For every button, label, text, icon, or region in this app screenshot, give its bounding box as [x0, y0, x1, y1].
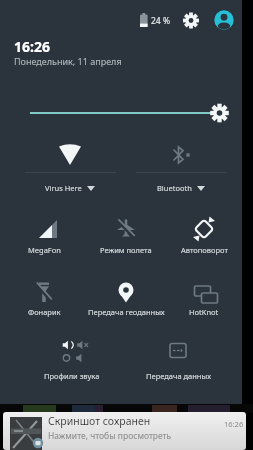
button[interactable]: Bluetooth: [135, 138, 227, 200]
button[interactable]: Передача геоданных: [80, 275, 172, 325]
button[interactable]: Передача данных: [132, 335, 224, 389]
button[interactable]: Профили звука: [26, 335, 118, 389]
staticText: 24 %: [151, 15, 170, 27]
staticText: 16:26: [224, 419, 244, 429]
button[interactable]: Скриншот сохранен: [3, 412, 246, 450]
button[interactable]: Режим полета: [80, 213, 172, 263]
staticText: HotKnot: [189, 307, 219, 317]
staticText: Bluetooth: [157, 183, 192, 193]
staticText: Virus Here: [45, 183, 82, 193]
button[interactable]: [214, 10, 234, 30]
button[interactable]: MegaFon: [0, 213, 90, 263]
button[interactable]: [22, 101, 232, 125]
staticText: Передача геоданных: [88, 307, 165, 317]
staticText: Фонарик: [28, 307, 61, 317]
staticText: Передача данных: [146, 371, 211, 381]
staticText: Режим полета: [100, 245, 152, 255]
button[interactable]: Автоповорот: [158, 213, 250, 263]
button[interactable]: [181, 10, 201, 30]
staticText: 16:26: [14, 37, 50, 56]
staticText: Скриншот сохранен: [48, 414, 151, 428]
button[interactable]: Virus Here: [24, 138, 116, 200]
button[interactable]: HotKnot: [158, 275, 250, 325]
staticText: Понедельник, 11 апреля: [14, 55, 122, 67]
staticText: Профили звука: [44, 371, 100, 381]
staticText: Автоповорот: [181, 245, 228, 255]
staticText: MegaFon: [28, 245, 61, 255]
button[interactable]: Фонарик: [0, 275, 90, 325]
staticText: Нажмите, чтобы просмотреть: [48, 430, 172, 442]
